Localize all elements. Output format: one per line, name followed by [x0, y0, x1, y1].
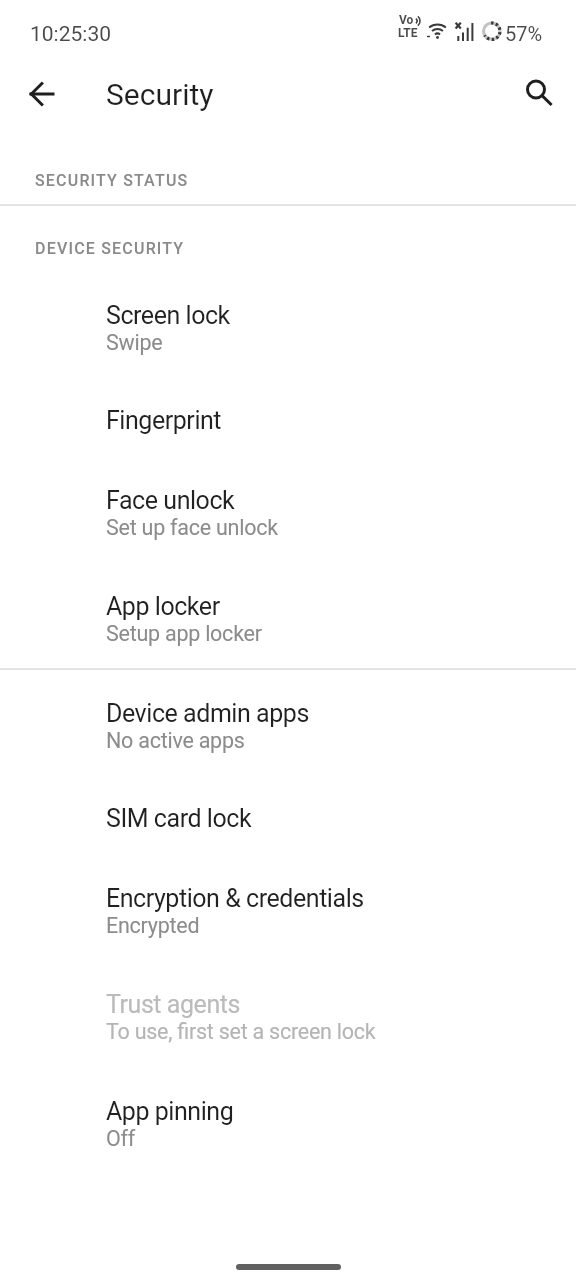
staticText: To use, first set a screen lock [106, 1019, 376, 1044]
staticText: Vo [399, 13, 414, 27]
staticText: Setup app locker [106, 621, 262, 646]
staticText: 57% [505, 22, 543, 45]
button[interactable] [16, 68, 68, 120]
staticText: Device admin apps [106, 699, 309, 728]
staticText: DEVICE SECURITY [35, 239, 185, 258]
staticText: App pinning [106, 1097, 234, 1126]
button[interactable]: SIM card lock [0, 780, 576, 857]
staticText: Screen lock [106, 301, 230, 330]
staticText: Face unlock [106, 486, 235, 515]
staticText: Off [106, 1126, 135, 1151]
button[interactable]: Device admin apps [0, 673, 576, 779]
staticText: Set up face unlock [106, 515, 278, 540]
button[interactable]: Screen lock [0, 275, 576, 381]
staticText: Fingerprint [106, 406, 222, 435]
staticText: No active apps [106, 728, 245, 753]
button[interactable] [513, 67, 563, 117]
staticText: 10:25:30 [30, 22, 111, 47]
staticText: SECURITY STATUS [35, 171, 189, 190]
button[interactable]: App locker [0, 566, 576, 672]
button[interactable]: Face unlock [0, 460, 576, 566]
button[interactable]: Fingerprint [0, 382, 576, 459]
staticText: Encrypted [106, 913, 200, 938]
staticText: LTE [398, 26, 418, 40]
button[interactable]: App pinning [0, 1071, 576, 1177]
button[interactable]: Encryption & credentials [0, 858, 576, 964]
staticText: Encryption & credentials [106, 884, 364, 913]
button[interactable]: Trust agents [0, 964, 576, 1070]
staticText: SIM card lock [106, 804, 252, 833]
staticText: Security [106, 77, 214, 112]
staticText: App locker [106, 592, 220, 621]
staticText: Trust agents [106, 990, 240, 1019]
staticText: Swipe [106, 330, 163, 355]
